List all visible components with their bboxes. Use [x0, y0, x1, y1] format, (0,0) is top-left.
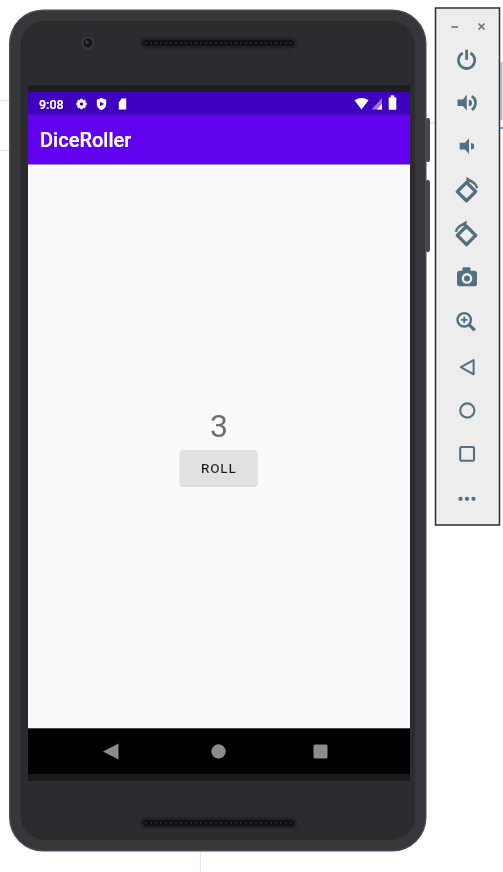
button[interactable] [450, 349, 482, 381]
button[interactable] [203, 731, 235, 771]
button[interactable]: ROLL [180, 450, 257, 485]
staticText: ROLL [201, 460, 237, 476]
button[interactable] [450, 216, 482, 248]
staticText: DiceRoller [40, 128, 132, 151]
button[interactable] [95, 731, 127, 771]
button[interactable] [450, 482, 482, 514]
button[interactable] [450, 87, 482, 119]
button[interactable] [305, 731, 337, 771]
staticText: 9:08 [39, 97, 64, 112]
button[interactable] [450, 130, 482, 162]
button[interactable] [450, 437, 482, 469]
button[interactable] [450, 259, 482, 291]
button[interactable] [450, 173, 482, 205]
button[interactable] [450, 44, 482, 76]
staticText: 3 [210, 407, 228, 445]
button[interactable] [450, 305, 482, 337]
button[interactable] [450, 393, 482, 425]
